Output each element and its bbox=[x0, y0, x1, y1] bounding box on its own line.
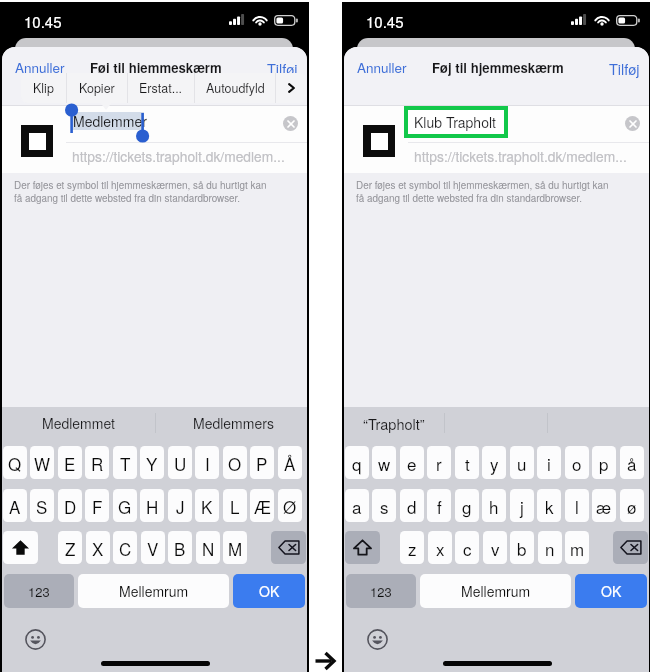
button[interactable]: Autoudfyld bbox=[195, 73, 275, 103]
button[interactable]: m bbox=[565, 531, 589, 564]
button[interactable]: Annuller bbox=[15, 58, 65, 77]
button[interactable]: J bbox=[168, 489, 192, 522]
staticText: Tilføj bbox=[267, 58, 298, 79]
button[interactable]: Backspace bbox=[613, 531, 648, 564]
button[interactable]: o bbox=[565, 446, 589, 479]
button[interactable]: V bbox=[141, 531, 165, 564]
button[interactable]: u bbox=[510, 446, 534, 479]
button[interactable]: c bbox=[455, 531, 479, 564]
button[interactable]: W bbox=[30, 446, 54, 479]
button[interactable]: P bbox=[250, 446, 274, 479]
button[interactable]: H bbox=[140, 489, 164, 522]
button[interactable]: a bbox=[345, 489, 369, 522]
button[interactable]: A bbox=[3, 489, 27, 522]
staticText: a bbox=[352, 494, 362, 518]
staticText: f bbox=[437, 494, 442, 518]
staticText: E bbox=[64, 451, 76, 475]
button[interactable]: t bbox=[455, 446, 479, 479]
staticText: Mellemrum bbox=[461, 581, 531, 601]
button[interactable]: Clear text bbox=[283, 116, 298, 131]
button[interactable]: Mellemrum bbox=[420, 574, 571, 608]
staticText: 123 bbox=[28, 582, 50, 601]
button[interactable]: x bbox=[428, 531, 452, 564]
button[interactable]: C bbox=[113, 531, 137, 564]
button[interactable]: r bbox=[427, 446, 451, 479]
button[interactable]: Annuller bbox=[357, 58, 407, 77]
button[interactable]: f bbox=[427, 489, 451, 522]
button[interactable]: Kopier bbox=[67, 73, 127, 103]
staticText: æ bbox=[596, 494, 612, 518]
staticText: i bbox=[547, 451, 551, 475]
staticText: Annuller bbox=[357, 58, 407, 77]
button[interactable]: z bbox=[400, 531, 424, 564]
button[interactable]: Emoji keyboard bbox=[367, 629, 388, 650]
button[interactable]: B bbox=[168, 531, 192, 564]
button[interactable]: K bbox=[195, 489, 219, 522]
button[interactable]: 123 bbox=[4, 574, 74, 608]
button[interactable]: U bbox=[168, 446, 192, 479]
button[interactable]: b bbox=[510, 531, 534, 564]
button[interactable]: S bbox=[30, 489, 54, 522]
button[interactable]: Backspace bbox=[271, 531, 306, 564]
staticText: Medlemmer bbox=[73, 111, 147, 131]
button[interactable]: 123 bbox=[346, 574, 416, 608]
button[interactable]: Shift bbox=[3, 531, 38, 564]
button[interactable]: Tilføj bbox=[267, 58, 298, 79]
button[interactable]: v bbox=[483, 531, 507, 564]
button[interactable]: R bbox=[85, 446, 109, 479]
button[interactable]: N bbox=[196, 531, 220, 564]
button[interactable]: w bbox=[372, 446, 396, 479]
button[interactable]: n bbox=[538, 531, 562, 564]
button[interactable]: T bbox=[113, 446, 137, 479]
button[interactable]: X bbox=[86, 531, 110, 564]
button[interactable]: M bbox=[223, 531, 247, 564]
staticText: V bbox=[147, 536, 159, 560]
button[interactable]: OK bbox=[575, 574, 647, 608]
button[interactable]: q bbox=[345, 446, 369, 479]
button[interactable]: i bbox=[537, 446, 561, 479]
button[interactable]: Erstat... bbox=[128, 73, 194, 103]
button[interactable]: Shift bbox=[345, 531, 380, 564]
button[interactable]: l bbox=[565, 489, 589, 522]
button[interactable]: O bbox=[223, 446, 247, 479]
button[interactable]: Æ bbox=[250, 489, 274, 522]
button[interactable]: Klip bbox=[21, 73, 66, 103]
staticText: https://tickets.trapholt.dk/medlem... bbox=[72, 146, 285, 166]
button[interactable]: g bbox=[455, 489, 479, 522]
button[interactable]: e bbox=[400, 446, 424, 479]
button[interactable]: D bbox=[58, 489, 82, 522]
staticText: l bbox=[575, 494, 579, 518]
button[interactable]: Clear text bbox=[625, 116, 640, 131]
button[interactable]: d bbox=[400, 489, 424, 522]
staticText: T bbox=[120, 451, 131, 475]
button[interactable]: j bbox=[510, 489, 534, 522]
button[interactable]: Tilføj bbox=[609, 58, 640, 79]
staticText: Z bbox=[65, 536, 76, 560]
button[interactable]: Emoji keyboard bbox=[25, 629, 46, 650]
button[interactable]: y bbox=[482, 446, 506, 479]
staticText: q bbox=[352, 451, 362, 475]
button[interactable]: p bbox=[592, 446, 616, 479]
button[interactable]: More options bbox=[276, 73, 306, 103]
button[interactable]: Y bbox=[140, 446, 164, 479]
button[interactable]: I bbox=[195, 446, 219, 479]
button[interactable]: Å bbox=[278, 446, 302, 479]
button[interactable]: å bbox=[620, 446, 644, 479]
staticText: P bbox=[256, 451, 268, 475]
staticText: Q bbox=[8, 451, 22, 475]
button[interactable]: h bbox=[482, 489, 506, 522]
button[interactable]: L bbox=[223, 489, 247, 522]
button[interactable]: Z bbox=[58, 531, 82, 564]
button[interactable]: k bbox=[537, 489, 561, 522]
button[interactable]: Ø bbox=[278, 489, 302, 522]
button[interactable]: Mellemrum bbox=[78, 574, 229, 608]
button[interactable]: G bbox=[113, 489, 137, 522]
button[interactable]: OK bbox=[233, 574, 305, 608]
button[interactable]: Q bbox=[3, 446, 27, 479]
button[interactable]: F bbox=[85, 489, 109, 522]
button[interactable]: s bbox=[372, 489, 396, 522]
staticText: N bbox=[202, 536, 215, 560]
button[interactable]: E bbox=[58, 446, 82, 479]
button[interactable]: æ bbox=[592, 489, 616, 522]
button[interactable]: ø bbox=[620, 489, 644, 522]
